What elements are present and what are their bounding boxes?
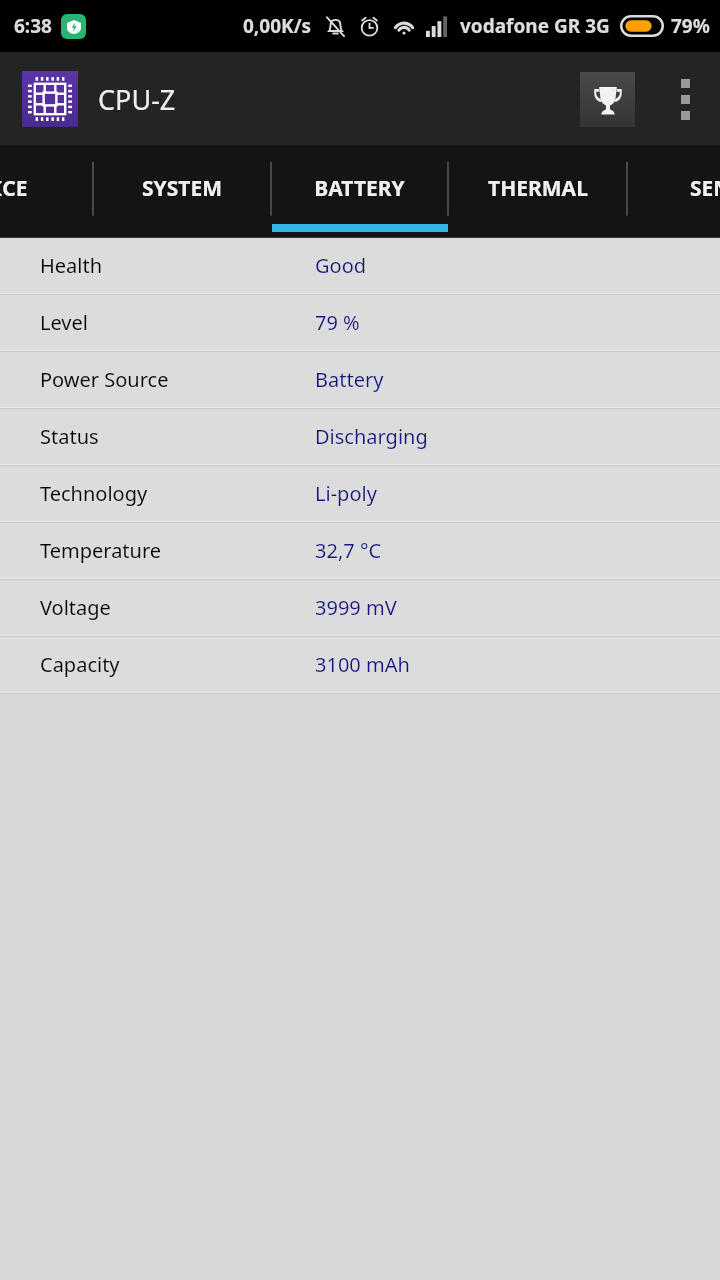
button[interactable]: CPU-Z [22, 71, 176, 127]
button[interactable]: Technology [0, 466, 720, 521]
staticText: 32,7 °C [315, 537, 382, 564]
staticText: Good [315, 252, 367, 279]
staticText: THERMAL [488, 174, 588, 203]
button[interactable]: Health [0, 238, 720, 293]
button[interactable]: Power Source [0, 352, 720, 407]
staticText: Voltage [40, 594, 111, 621]
button[interactable]: More options [662, 69, 708, 129]
staticText: SYSTEM [142, 174, 222, 203]
button[interactable]: Benchmark ranking [579, 71, 635, 127]
staticText: 0,00K/s [243, 13, 312, 39]
button[interactable]: THERMAL [448, 145, 627, 231]
button[interactable]: SYSTEM [93, 145, 271, 231]
staticText: Discharging [315, 423, 428, 450]
staticText: CPU-Z [98, 81, 176, 118]
button[interactable]: BATTERY [271, 145, 448, 231]
staticText: Power Source [40, 366, 169, 393]
staticText: vodafone GR 3G [460, 13, 610, 39]
button[interactable]: Capacity [0, 637, 720, 692]
staticText: BATTERY [314, 174, 405, 203]
button[interactable]: Level [0, 295, 720, 350]
staticText: 3999 mV [315, 594, 397, 621]
staticText: 3100 mAh [315, 651, 410, 678]
staticText: Li-poly [315, 480, 377, 507]
staticText: 79% [671, 13, 710, 39]
staticText: Level [40, 309, 88, 336]
staticText: 79 % [315, 309, 360, 336]
button[interactable]: SENS [627, 145, 720, 231]
staticText: Battery [315, 366, 384, 393]
staticText: Technology [40, 480, 148, 507]
staticText: Status [40, 423, 99, 450]
button[interactable]: Temperature [0, 523, 720, 578]
button[interactable]: Status [0, 409, 720, 464]
button[interactable]: VICE [0, 145, 93, 231]
staticText: Temperature [40, 537, 162, 564]
button[interactable]: Voltage [0, 580, 720, 635]
staticText: Health [40, 252, 103, 279]
staticText: 6:38 [14, 13, 52, 39]
staticText: SENS [690, 174, 720, 203]
staticText: Capacity [40, 651, 120, 678]
staticText: VICE [0, 174, 28, 203]
